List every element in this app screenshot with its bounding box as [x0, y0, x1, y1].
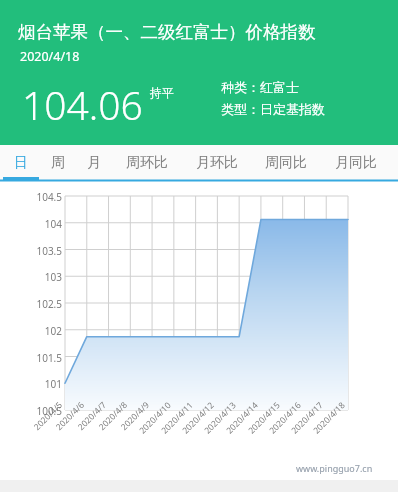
- staticText: 2020/4/17: [289, 399, 326, 436]
- staticText: 类型：日定基指数: [221, 101, 325, 117]
- staticText: 104.06: [22, 78, 143, 131]
- staticText: 2020/4/13: [202, 399, 239, 436]
- staticText: 烟台苹果（一、二级红富士）价格指数: [18, 21, 316, 43]
- staticText: 2020/4/11: [159, 399, 196, 436]
- staticText: 101.5: [10, 351, 62, 365]
- button[interactable]: 日: [7, 145, 35, 180]
- staticText: 102.5: [10, 297, 62, 311]
- staticText: 104: [10, 217, 62, 231]
- staticText: 2020/4/12: [180, 399, 217, 436]
- staticText: 月同比: [335, 154, 377, 172]
- staticText: 103.5: [10, 244, 62, 258]
- staticText: 2020/4/8: [96, 399, 130, 433]
- staticText: 2020/4/10: [137, 399, 174, 436]
- staticText: www.pingguo7.cn: [296, 462, 373, 474]
- staticText: 2020/4/6: [53, 399, 87, 433]
- staticText: 2020/4/15: [246, 399, 283, 436]
- button[interactable]: 周同比: [258, 145, 314, 180]
- staticText: 2020/4/14: [224, 399, 261, 436]
- staticText: 2020/4/18: [20, 48, 80, 65]
- button[interactable]: 月同比: [328, 145, 384, 180]
- staticText: 100.5: [10, 404, 62, 418]
- staticText: 持平: [150, 85, 174, 100]
- staticText: 周环比: [126, 154, 168, 172]
- staticText: 周: [51, 154, 65, 172]
- staticText: 2020/4/18: [311, 399, 348, 436]
- button[interactable]: 月: [80, 145, 108, 180]
- staticText: 2020/4/16: [267, 399, 304, 436]
- staticText: 102: [10, 324, 62, 338]
- button[interactable]: 周环比: [119, 145, 175, 180]
- button[interactable]: 月环比: [189, 145, 245, 180]
- staticText: 周同比: [265, 154, 307, 172]
- staticText: 2020/4/5: [31, 399, 65, 433]
- staticText: 104.5: [10, 190, 62, 204]
- staticText: 101: [10, 377, 62, 391]
- staticText: 日: [14, 154, 28, 172]
- staticText: 2020/4/7: [75, 399, 109, 433]
- staticText: 月环比: [196, 154, 238, 172]
- staticText: 种类：红富士: [221, 79, 299, 95]
- button[interactable]: 周: [44, 145, 72, 180]
- staticText: 月: [87, 154, 101, 172]
- staticText: 103: [10, 270, 62, 284]
- staticText: 2020/4/9: [118, 399, 152, 433]
